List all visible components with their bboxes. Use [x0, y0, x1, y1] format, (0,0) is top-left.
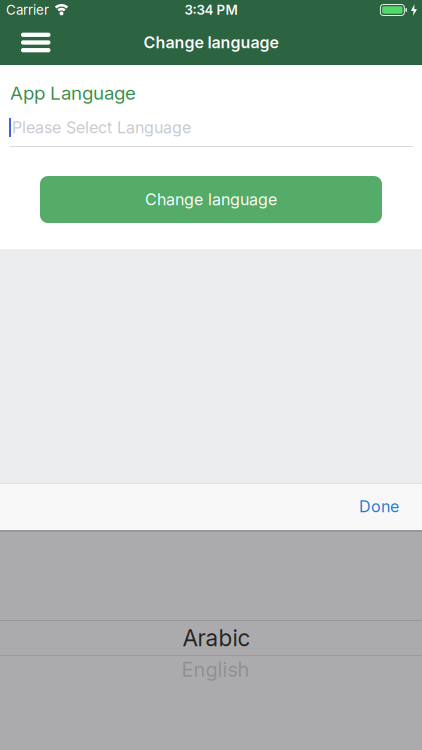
- staticText: Arabic: [182, 625, 250, 651]
- button[interactable]: Arabic: [0, 621, 422, 655]
- staticText: Change language: [145, 190, 277, 209]
- staticText: Done: [359, 497, 399, 516]
- button[interactable]: English: [0, 656, 422, 683]
- button[interactable]: Done: [347, 483, 422, 530]
- staticText: App Language: [10, 82, 136, 104]
- button[interactable]: Menu: [0, 20, 62, 65]
- staticText: 3:34 PM: [184, 2, 237, 18]
- button[interactable]: Please Select Language: [0, 104, 422, 147]
- staticText: Carrier: [6, 2, 49, 18]
- button[interactable]: Change language: [0, 176, 422, 223]
- staticText: English: [181, 658, 249, 681]
- staticText: Please Select Language: [12, 118, 191, 137]
- staticText: Change language: [143, 33, 278, 52]
